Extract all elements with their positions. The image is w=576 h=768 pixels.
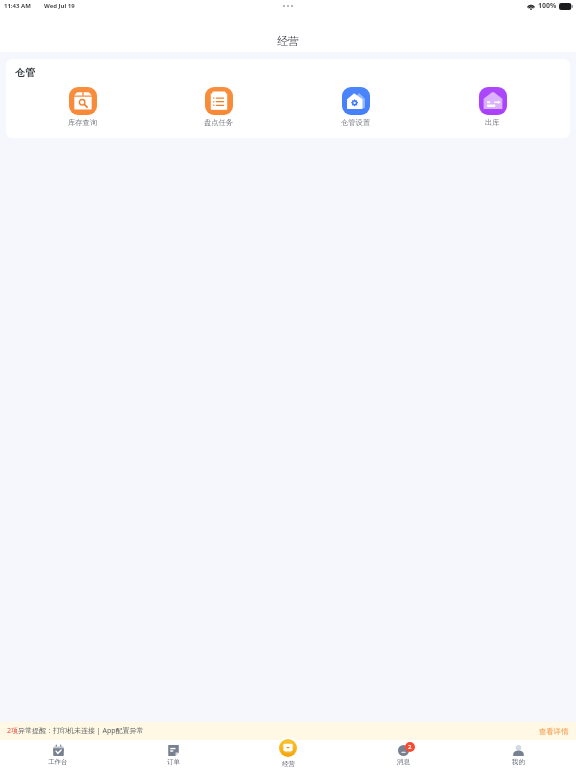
button[interactable]: 盘点任务 bbox=[151, 87, 287, 127]
staticText: 2项异常提醒：打印机未连接 | App配置异常 bbox=[7, 726, 144, 736]
button[interactable]: 工作台 bbox=[0, 740, 116, 768]
staticText: 经营 bbox=[277, 34, 299, 48]
button[interactable]: 出库 bbox=[424, 87, 561, 127]
button[interactable]: 订单 bbox=[116, 740, 231, 768]
staticText: Wed Jul 19 bbox=[44, 2, 75, 10]
staticText: 仓管 bbox=[15, 66, 35, 79]
button[interactable]: 2项异常提醒：打印机未连接 | App配置异常 bbox=[0, 722, 576, 740]
staticText: 11:43 AM bbox=[4, 2, 31, 10]
staticText: 订单 bbox=[167, 758, 180, 766]
staticText: 工作台 bbox=[48, 758, 68, 766]
button[interactable]: 仓管设置 bbox=[287, 87, 424, 127]
button[interactable]: 库存查询 bbox=[15, 87, 151, 127]
staticText: 盘点任务 bbox=[204, 118, 234, 127]
staticText: 仓管设置 bbox=[341, 118, 371, 127]
button[interactable]: 我的 bbox=[461, 740, 576, 768]
staticText: 查看详情 bbox=[539, 727, 569, 736]
staticText: 100% bbox=[538, 1, 557, 11]
button[interactable]: 2 bbox=[346, 740, 461, 768]
staticText: 2 bbox=[408, 743, 412, 751]
staticText: 经营 bbox=[282, 760, 295, 768]
staticText: 库存查询 bbox=[68, 118, 98, 127]
staticText: 出库 bbox=[485, 118, 500, 127]
staticText: 我的 bbox=[512, 758, 525, 766]
staticText: 消息 bbox=[397, 758, 410, 766]
button[interactable]: 经营 bbox=[266, 735, 310, 768]
